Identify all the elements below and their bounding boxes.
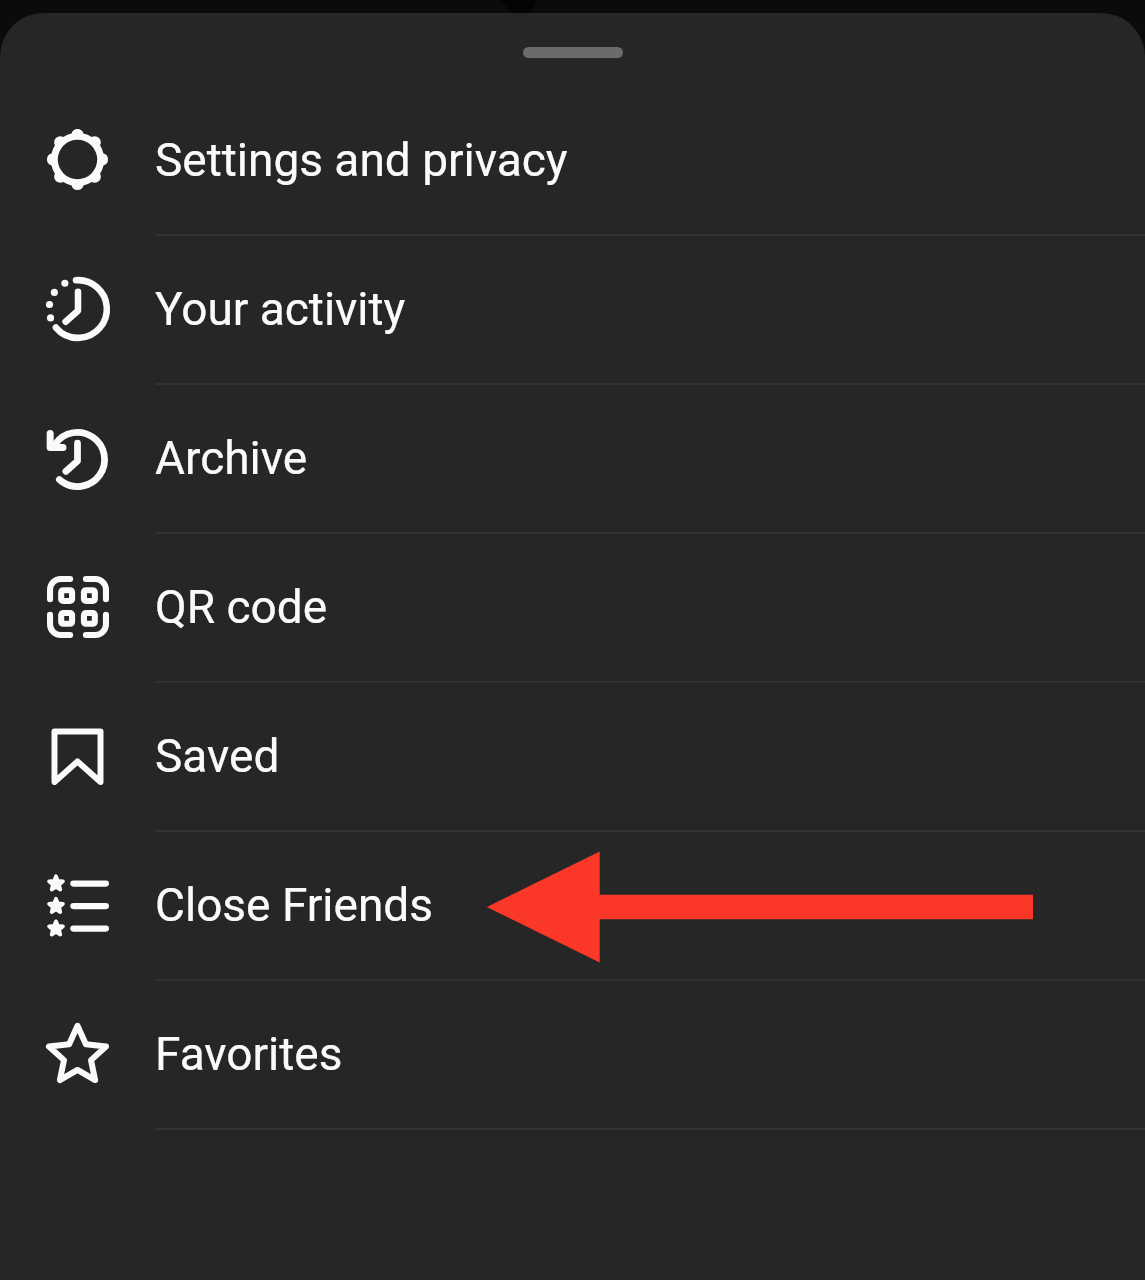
button[interactable]: Your activity bbox=[0, 236, 1145, 385]
button[interactable]: Archive bbox=[0, 385, 1145, 534]
button[interactable]: Close Friends bbox=[0, 832, 1145, 981]
button[interactable]: Settings and privacy bbox=[0, 87, 1145, 236]
staticText: Settings and privacy bbox=[155, 133, 568, 187]
button[interactable]: Drag handle bbox=[0, 13, 1145, 87]
staticText: Favorites bbox=[155, 1027, 343, 1081]
staticText: QR code bbox=[155, 580, 328, 634]
button[interactable]: QR code bbox=[0, 534, 1145, 683]
staticText: Archive bbox=[155, 431, 308, 485]
staticText: Your activity bbox=[155, 282, 406, 336]
button[interactable]: Saved bbox=[0, 683, 1145, 832]
staticText: Saved bbox=[155, 729, 280, 783]
staticText: Close Friends bbox=[155, 878, 433, 932]
button[interactable]: Favorites bbox=[0, 981, 1145, 1130]
